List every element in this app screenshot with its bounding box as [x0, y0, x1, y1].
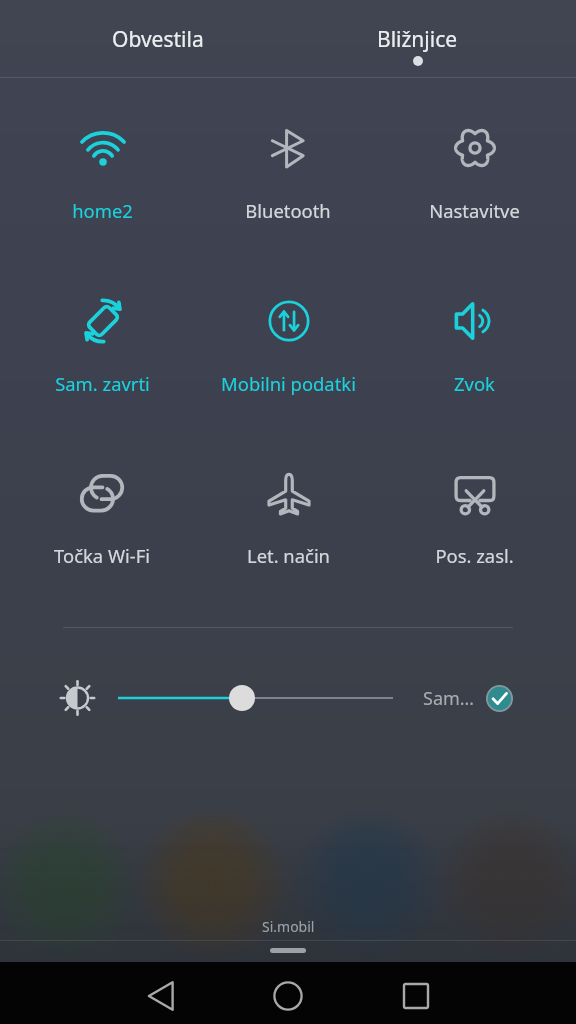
button[interactable]: Sam. zavrti — [9, 282, 195, 455]
button[interactable]: Točka Wi-Fi — [9, 454, 195, 627]
staticText: Točka Wi-Fi — [54, 543, 150, 568]
staticText: Pos. zasl. — [435, 543, 514, 568]
staticText: home2 — [72, 198, 133, 223]
staticText: Let. način — [247, 543, 330, 568]
button[interactable]: Bližnjice — [288, 0, 576, 77]
button[interactable]: Obvestila — [0, 0, 288, 77]
button[interactable]: Sam… — [0, 676, 576, 722]
staticText: Obvestila — [112, 25, 204, 54]
button[interactable]: Pos. zasl. — [381, 454, 567, 627]
staticText: Zvok — [454, 371, 495, 396]
button[interactable]: Nastavitve — [381, 109, 567, 282]
staticText: Sam… — [423, 686, 475, 711]
button[interactable]: Auto brightness — [486, 685, 513, 712]
button[interactable]: Recents — [384, 965, 448, 1024]
button[interactable]: Bluetooth — [195, 109, 381, 282]
button[interactable]: Let. način — [195, 454, 381, 627]
button[interactable]: Zvok — [381, 282, 567, 455]
staticText: Sam. zavrti — [55, 371, 150, 396]
button[interactable]: home2 — [9, 109, 195, 282]
staticText: Bližnjice — [377, 25, 458, 54]
button[interactable]: Home — [256, 965, 320, 1024]
staticText: Mobilni podatki — [221, 371, 356, 396]
staticText: Si.mobil — [262, 917, 315, 936]
button[interactable]: Back — [128, 965, 192, 1024]
button[interactable]: Mobilni podatki — [195, 282, 381, 455]
staticText: Bluetooth — [245, 198, 331, 223]
staticText: Nastavitve — [429, 198, 520, 223]
